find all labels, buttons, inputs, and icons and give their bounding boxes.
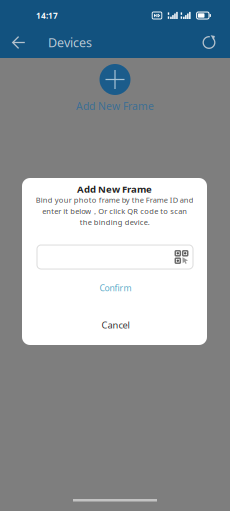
staticText: Bind your photo frame by the Frame ID an… (35, 195, 193, 227)
staticText: Confirm (99, 282, 131, 294)
button[interactable]: Add New Frame (55, 64, 175, 113)
button[interactable]: Refresh (191, 26, 227, 59)
button[interactable]: Scan QR code (170, 245, 193, 268)
button[interactable]: Cancel (37, 316, 194, 334)
button[interactable]: Confirm (37, 279, 194, 297)
button[interactable]: Back (0, 26, 37, 59)
staticText: Devices (48, 34, 92, 51)
staticText: Add New Frame (77, 182, 152, 196)
staticText: 14:17 (36, 10, 58, 21)
staticText: Cancel (101, 319, 129, 331)
staticText: Add New Frame (76, 99, 154, 113)
